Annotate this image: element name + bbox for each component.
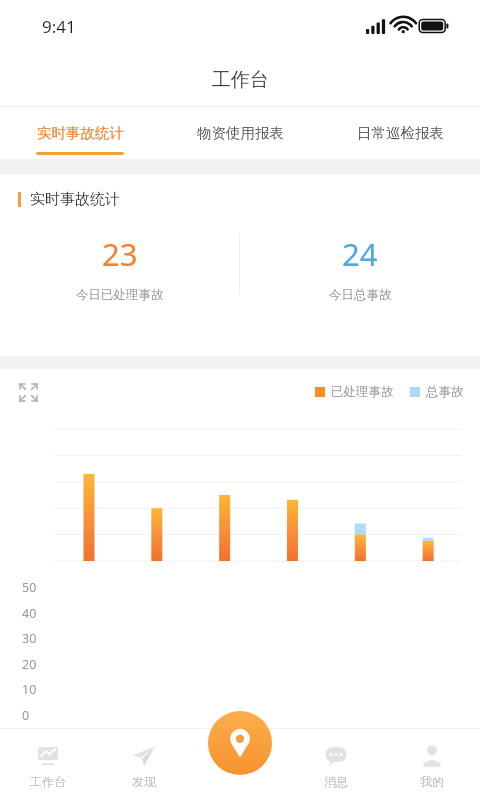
staticText: 我的 bbox=[420, 774, 444, 789]
button[interactable]: Location bbox=[208, 711, 272, 775]
button[interactable]: 24 bbox=[240, 233, 480, 323]
staticText: 发现 bbox=[132, 774, 156, 789]
button[interactable]: 工作台 bbox=[0, 728, 96, 800]
staticText: 24 bbox=[342, 233, 378, 275]
button[interactable]: 消息 bbox=[288, 728, 384, 800]
staticText: 30 bbox=[22, 630, 37, 647]
staticText: 10 bbox=[22, 681, 37, 698]
button[interactable]: 23 bbox=[0, 233, 239, 323]
button[interactable]: 我的 bbox=[384, 728, 480, 800]
button[interactable]: 实时事故统计 bbox=[0, 107, 160, 159]
staticText: 日常巡检报表 bbox=[357, 124, 444, 142]
staticText: 已处理事故 bbox=[331, 384, 394, 400]
staticText: 9:41 bbox=[42, 15, 76, 38]
staticText: 总事故 bbox=[426, 384, 464, 400]
staticText: 工作台 bbox=[212, 68, 269, 92]
button[interactable]: 物资使用报表 bbox=[160, 107, 320, 159]
staticText: 今日总事故 bbox=[329, 287, 392, 303]
staticText: 23 bbox=[102, 233, 138, 275]
staticText: 实时事故统计 bbox=[37, 124, 124, 142]
button[interactable]: Fullscreen bbox=[14, 378, 42, 406]
staticText: 消息 bbox=[324, 774, 348, 789]
staticText: 实时事故统计 bbox=[30, 190, 120, 209]
staticText: 40 bbox=[22, 605, 37, 622]
staticText: 今日已处理事故 bbox=[76, 287, 164, 303]
button[interactable]: 日常巡检报表 bbox=[320, 107, 480, 159]
staticText: 物资使用报表 bbox=[197, 124, 284, 142]
staticText: 0 bbox=[22, 707, 30, 724]
staticText: 工作台 bbox=[30, 774, 66, 789]
button[interactable]: 发现 bbox=[96, 728, 192, 800]
staticText: 20 bbox=[22, 656, 37, 673]
staticText: 50 bbox=[22, 579, 37, 596]
